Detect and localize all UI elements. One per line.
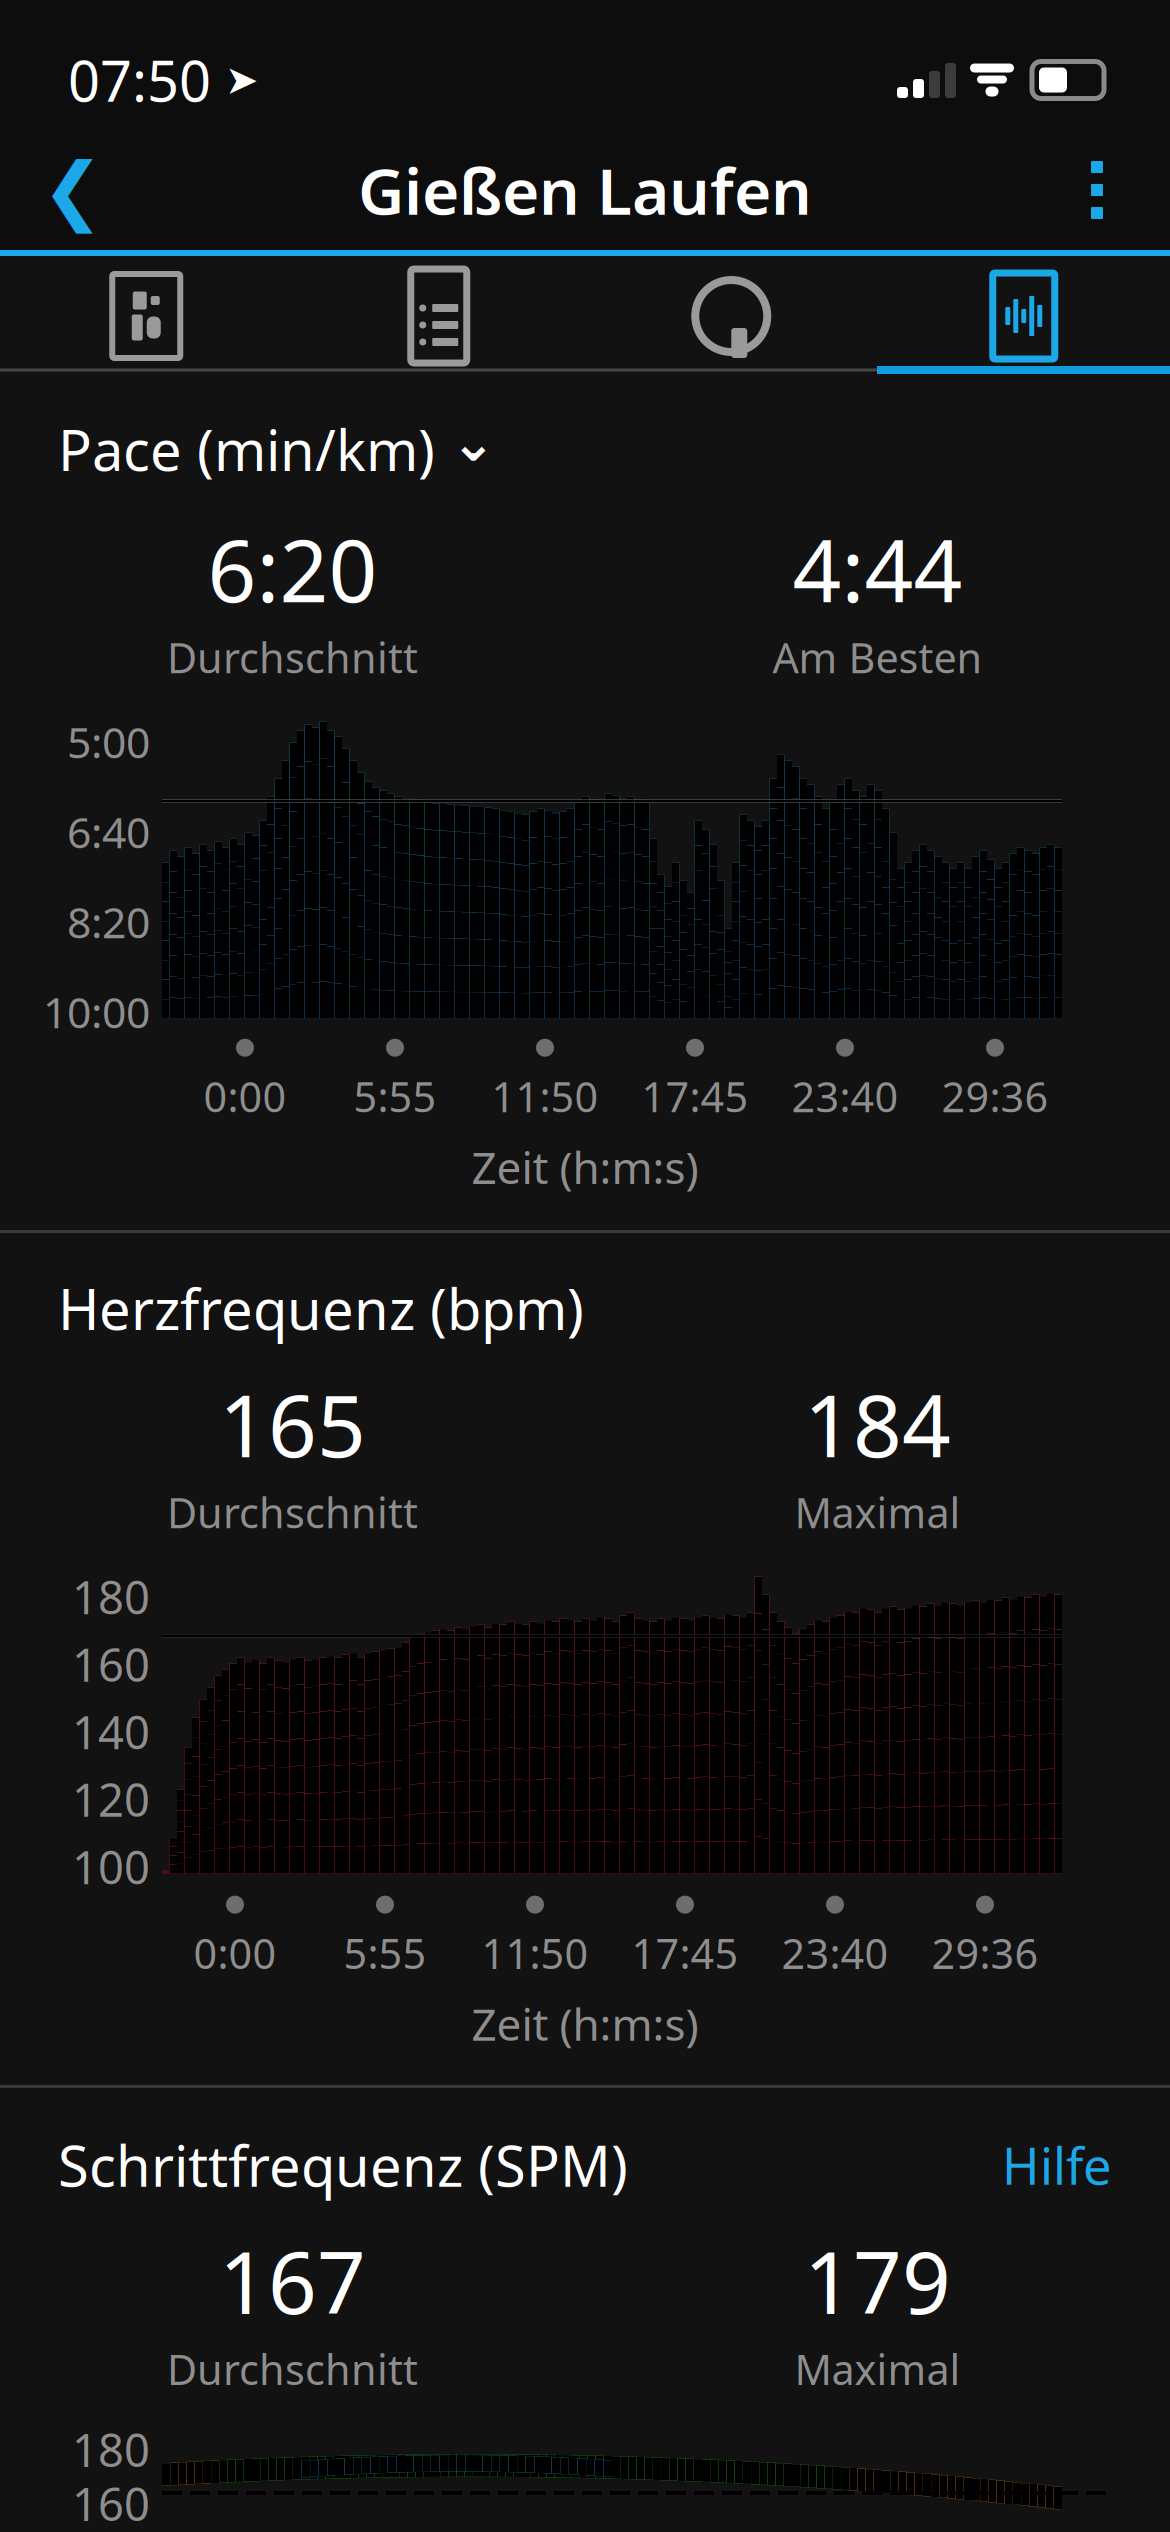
staticText: Maximal	[794, 2342, 960, 2396]
staticText: 11:50	[491, 1069, 598, 1124]
staticText: Am Besten	[772, 630, 982, 685]
staticText: 23:40	[781, 1926, 888, 1980]
staticText: Maximal	[794, 1485, 960, 1540]
staticText: Zeit (h:m:s)	[471, 1994, 698, 2053]
button[interactable]: More options	[1042, 135, 1152, 245]
button[interactable]: Charts	[877, 268, 1170, 364]
staticText: 07:50	[68, 43, 211, 117]
staticText: 17:45	[631, 1926, 738, 1980]
button[interactable]: Hilfe	[1002, 2131, 1112, 2199]
button[interactable]: Map	[0, 268, 292, 364]
staticText: ❮	[41, 148, 104, 232]
staticText: Durchschnitt	[167, 2342, 418, 2396]
staticText: 100	[72, 1836, 150, 1897]
staticText: 29:36	[941, 1069, 1048, 1124]
staticText: 5:55	[353, 1069, 436, 1124]
staticText: 167	[219, 2224, 366, 2338]
staticText: 10:00	[43, 983, 150, 1040]
staticText: 8:20	[67, 893, 150, 950]
staticText: ⌄	[451, 412, 496, 472]
staticText: 180	[72, 1566, 150, 1627]
staticText: 5:55	[343, 1926, 426, 1980]
staticText: 0:00	[203, 1069, 286, 1124]
staticText: Gießen Laufen	[358, 147, 812, 232]
staticText: 140	[72, 1701, 150, 1762]
staticText: 180	[72, 2419, 150, 2480]
staticText: Pace (min/km)	[58, 412, 435, 486]
staticText: Herzfrequenz (bpm)	[58, 1271, 584, 1345]
staticText: 23:40	[791, 1069, 898, 1124]
staticText: 4:44	[792, 512, 962, 626]
staticText: 0:00	[193, 1926, 276, 1980]
staticText: 29:36	[931, 1926, 1038, 1980]
staticText: ➤	[225, 57, 259, 103]
button[interactable]: Details	[292, 268, 585, 364]
button[interactable]: Back	[18, 135, 128, 245]
staticText: 184	[804, 1367, 951, 1481]
staticText: Durchschnitt	[167, 1485, 418, 1540]
staticText: 179	[804, 2224, 951, 2338]
staticText: 6:20	[207, 512, 377, 626]
staticText: 165	[219, 1367, 366, 1481]
staticText: Zeit (h:m:s)	[471, 1138, 698, 1196]
staticText: Durchschnitt	[167, 630, 418, 685]
staticText: 5:00	[67, 713, 150, 770]
staticText: Hilfe	[1002, 2131, 1112, 2199]
staticText: 160	[72, 1634, 150, 1694]
staticText: 160	[72, 2473, 150, 2532]
staticText: 6:40	[67, 803, 150, 860]
staticText: 17:45	[641, 1069, 748, 1124]
button[interactable]: Pace (min/km)	[58, 412, 496, 486]
button[interactable]: Laps	[585, 268, 877, 364]
staticText: Schrittfrequenz (SPM)	[58, 2128, 628, 2202]
staticText: 11:50	[481, 1926, 588, 1980]
staticText: 120	[72, 1769, 150, 1829]
